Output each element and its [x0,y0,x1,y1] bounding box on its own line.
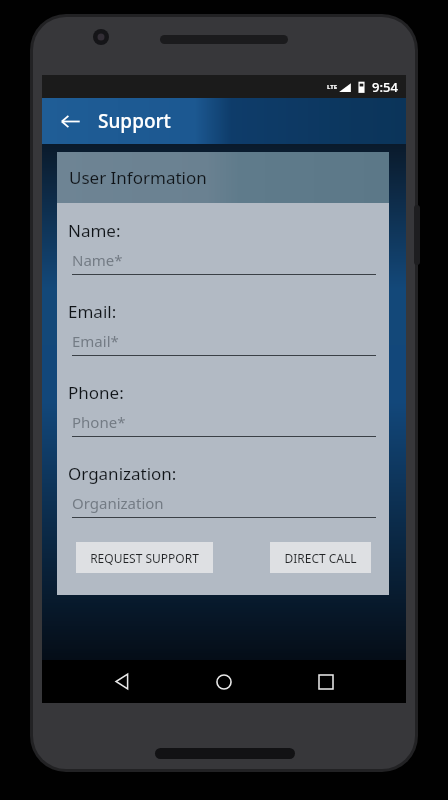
staticText: DIRECT CALL [284,550,357,566]
button[interactable]: Email* [68,331,376,356]
button[interactable]: Name* [68,250,376,275]
button[interactable]: Recents [304,660,348,703]
staticText: 9:54 [372,78,398,96]
button[interactable]: Phone* [68,412,376,437]
button[interactable]: Home [202,660,246,703]
staticText: Email: [68,300,117,323]
button[interactable]: REQUEST SUPPORT [76,542,213,573]
button[interactable]: Organization [68,493,376,518]
staticText: Phone: [68,381,124,404]
button[interactable]: Back [100,660,144,703]
staticText: Name: [68,219,121,242]
staticText: Support [98,108,171,134]
staticText: Organization: [68,462,177,485]
button[interactable]: Back [53,104,87,138]
button[interactable]: DIRECT CALL [270,542,371,573]
staticText: Phone* [72,412,126,432]
staticText: Email* [72,331,119,351]
staticText: Name* [72,250,123,270]
staticText: User Information [69,166,207,189]
staticText: REQUEST SUPPORT [90,550,199,566]
staticText: LTE [327,83,338,91]
staticText: Organization [72,493,164,513]
